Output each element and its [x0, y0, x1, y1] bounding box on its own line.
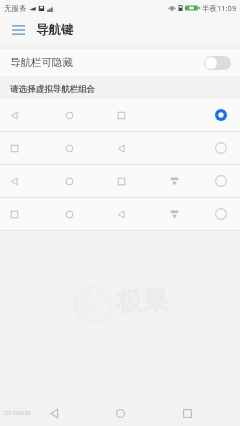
staticText: 导航栏可隐藏	[10, 56, 73, 69]
button[interactable]	[0, 99, 240, 131]
staticText: 无服务	[4, 4, 27, 13]
button[interactable]: Recents	[174, 400, 200, 426]
button[interactable]: 导航栏可隐藏	[0, 49, 240, 76]
button[interactable]	[0, 165, 240, 197]
staticText: ITP XIAOMI	[4, 410, 31, 417]
staticText: 半夜11:09	[202, 3, 237, 13]
staticText: 极果	[116, 285, 168, 318]
button[interactable]: Home	[107, 400, 133, 426]
button[interactable]	[0, 132, 240, 164]
staticText: 导航键	[36, 22, 74, 38]
staticText: 请选择虚拟导航栏组合	[10, 84, 95, 95]
button[interactable]: Back	[41, 400, 67, 426]
button[interactable]	[0, 198, 240, 230]
button[interactable]: Menu	[8, 20, 28, 40]
